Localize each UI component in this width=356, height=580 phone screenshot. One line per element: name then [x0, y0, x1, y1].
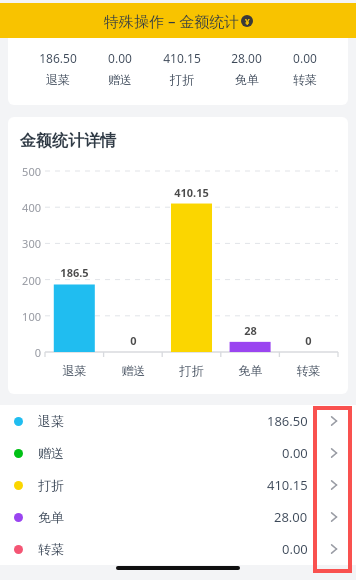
other: 查看详情 免单: [322, 505, 346, 529]
other: 查看详情 退菜: [322, 409, 346, 433]
staticText: 186.5: [45, 265, 104, 280]
staticText: 0.00: [282, 540, 308, 558]
staticText: 转菜: [38, 541, 64, 557]
staticText: 退菜: [46, 72, 70, 87]
staticText: 打折: [38, 477, 64, 493]
staticText: 免单: [235, 72, 259, 87]
staticText: 0.00: [293, 50, 317, 66]
staticText: 300: [12, 236, 41, 251]
staticText: 28.00: [274, 508, 308, 526]
staticText: 410.15: [163, 50, 201, 66]
button[interactable]: 赠送: [0, 437, 356, 469]
other: 查看详情 转菜: [322, 537, 346, 561]
button[interactable]: 免单: [0, 501, 356, 533]
staticText: 免单: [221, 363, 280, 378]
staticText: ¥: [245, 16, 250, 27]
staticText: 退菜: [45, 363, 104, 378]
staticText: 200: [12, 273, 41, 288]
staticText: 0.00: [108, 50, 132, 66]
button[interactable]: 转菜: [0, 533, 356, 565]
staticText: 28: [221, 323, 280, 338]
staticText: 0: [104, 333, 163, 348]
other: 查看详情 打折: [322, 473, 346, 497]
staticText: 免单: [38, 509, 64, 525]
staticText: 186.50: [39, 50, 77, 66]
staticText: 退菜: [38, 413, 64, 429]
staticText: 打折: [162, 363, 221, 378]
staticText: 赠送: [108, 72, 132, 87]
staticText: 赠送: [38, 445, 64, 461]
button[interactable]: 退菜: [0, 405, 356, 437]
staticText: 0.00: [282, 444, 308, 462]
staticText: 特殊操作 – 金额统计: [104, 11, 240, 31]
staticText: 0: [12, 345, 41, 360]
staticText: 28.00: [231, 50, 262, 66]
staticText: 打折: [170, 72, 194, 87]
staticText: 赠送: [104, 363, 163, 378]
staticText: 金额统计详情: [20, 131, 116, 151]
other: 查看详情 赠送: [322, 441, 346, 465]
staticText: 100: [12, 309, 41, 324]
staticText: 410.15: [267, 476, 308, 494]
staticText: 500: [12, 164, 41, 179]
staticText: 410.15: [162, 185, 221, 200]
staticText: 400: [12, 200, 41, 215]
staticText: 186.50: [267, 412, 308, 430]
button[interactable]: 打折: [0, 469, 356, 501]
staticText: 0: [279, 333, 338, 348]
staticText: 转菜: [279, 363, 338, 378]
staticText: 转菜: [293, 72, 317, 87]
other: 金额: [241, 15, 253, 27]
